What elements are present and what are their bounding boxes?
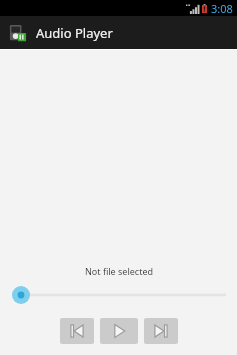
button[interactable]: Previous	[60, 318, 94, 344]
staticText: 3:08	[211, 1, 233, 16]
button[interactable]: Next	[144, 318, 178, 344]
button[interactable]: Play	[100, 318, 138, 344]
staticText: Not file selected	[85, 265, 153, 277]
staticText: Audio Player	[36, 24, 113, 42]
button[interactable]: Seek position	[0, 285, 237, 305]
